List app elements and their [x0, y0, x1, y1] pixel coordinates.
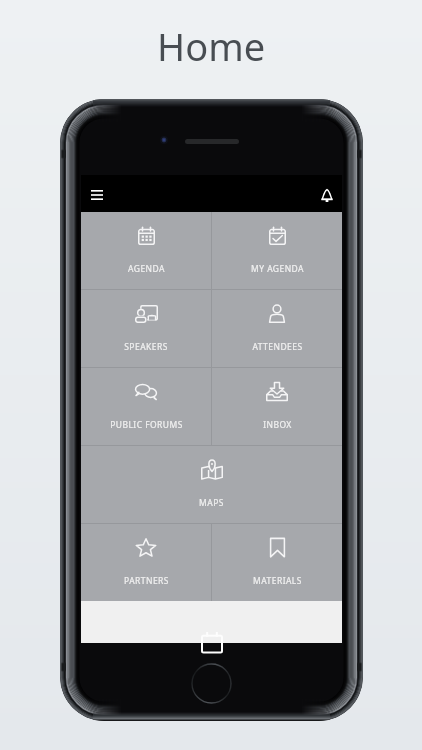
- button[interactable]: MAPS: [81, 446, 342, 523]
- button[interactable]: AGENDA: [81, 212, 211, 289]
- button[interactable]: MATERIALS: [212, 524, 342, 601]
- button[interactable]: PARTNERS: [81, 524, 211, 601]
- button[interactable]: PUBLIC FORUMS: [81, 368, 211, 445]
- staticText: AGENDA: [128, 263, 165, 275]
- staticText: MATERIALS: [253, 575, 302, 587]
- button[interactable]: MY AGENDA: [212, 212, 342, 289]
- staticText: PARTNERS: [124, 575, 169, 587]
- staticText: MY AGENDA: [251, 263, 304, 275]
- button[interactable]: Open navigation menu: [84, 182, 110, 208]
- button[interactable]: SPEAKERS: [81, 290, 211, 367]
- staticText: PUBLIC FORUMS: [110, 419, 183, 431]
- staticText: Home: [157, 20, 266, 72]
- staticText: SPEAKERS: [124, 341, 168, 353]
- staticText: ATTENDEES: [252, 341, 303, 353]
- staticText: INBOX: [263, 419, 292, 431]
- staticText: MAPS: [199, 497, 224, 509]
- button[interactable]: ATTENDEES: [212, 290, 342, 367]
- button[interactable]: Notifications: [314, 182, 340, 208]
- button[interactable]: INBOX: [212, 368, 342, 445]
